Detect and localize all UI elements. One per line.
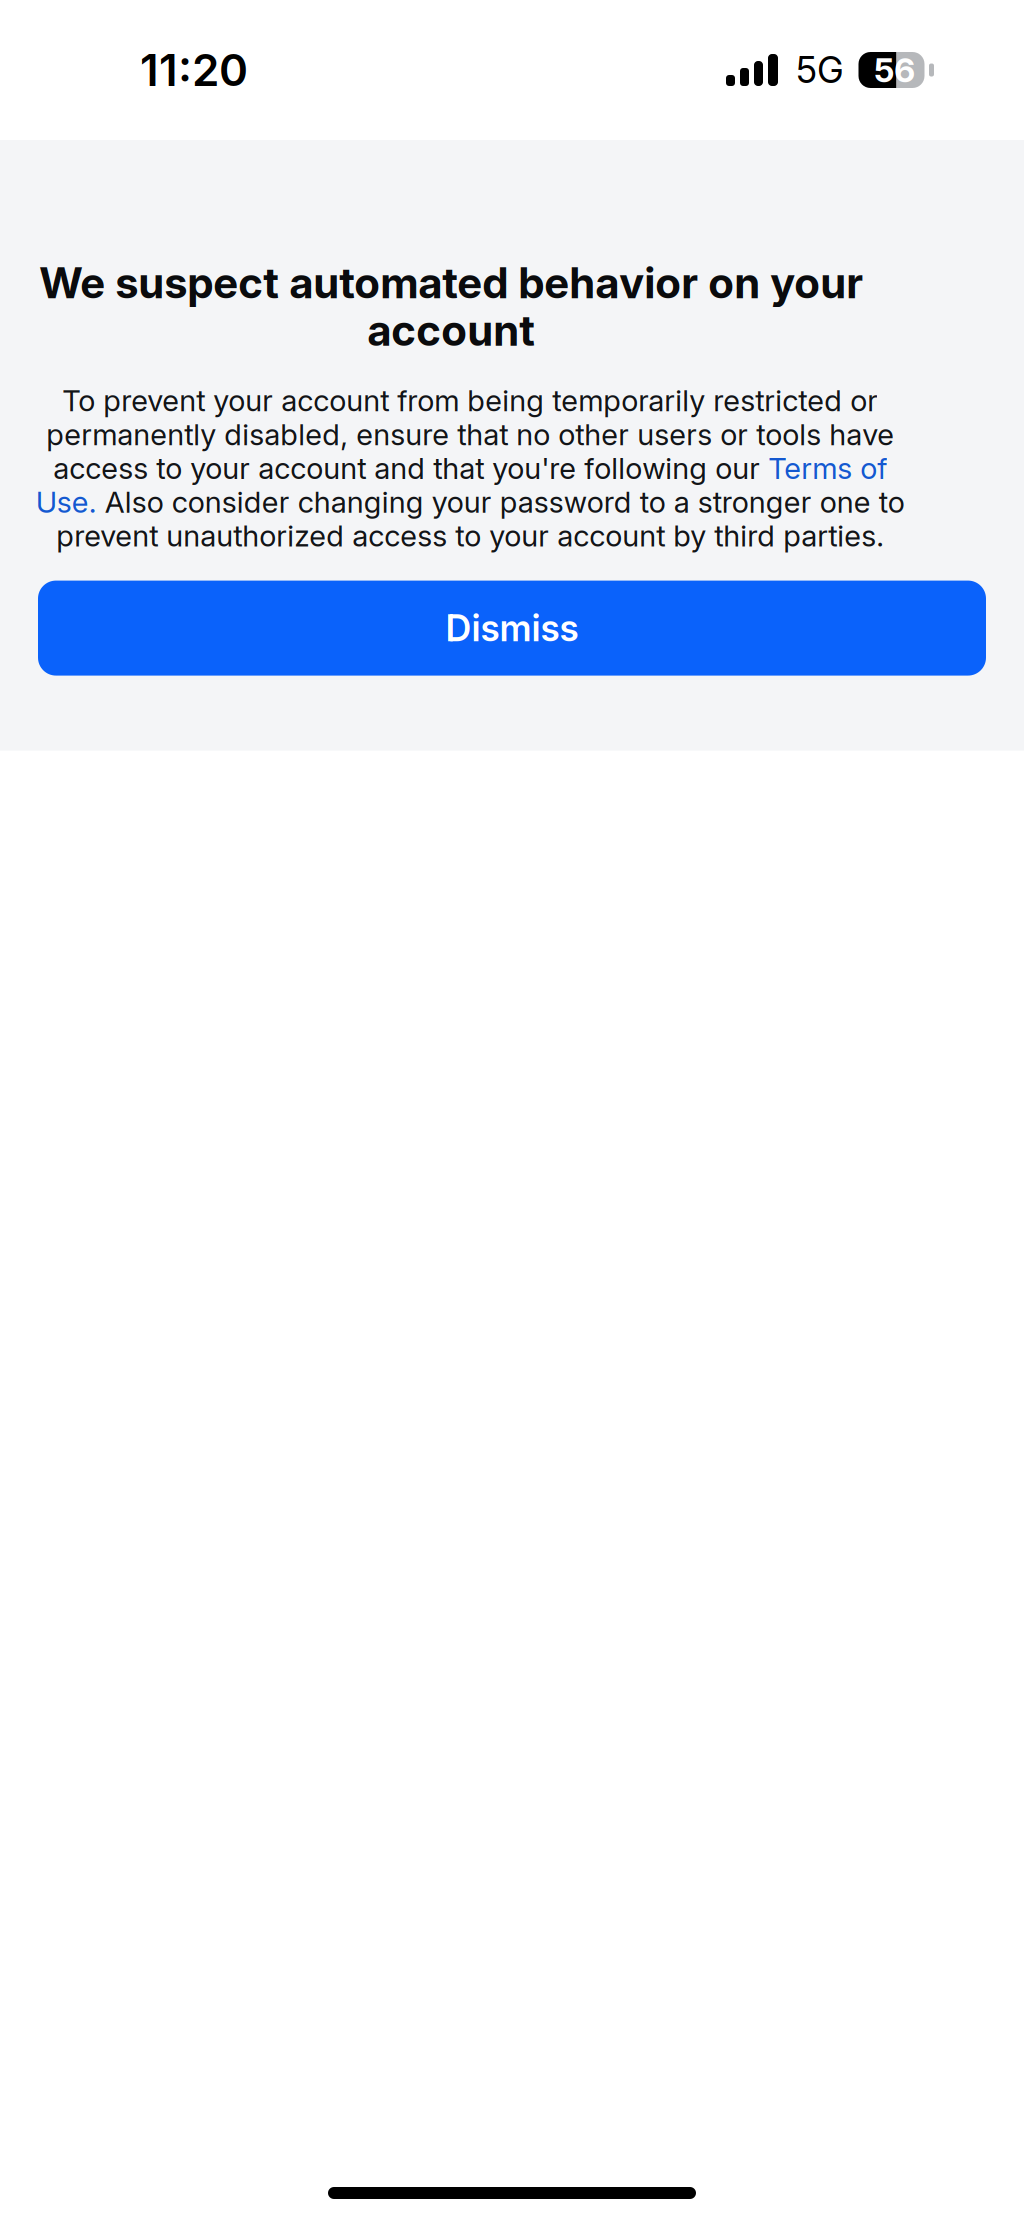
staticText: 56 bbox=[874, 50, 915, 90]
staticText: To prevent your account from being tempo… bbox=[35, 383, 904, 554]
staticText: 5G bbox=[796, 48, 844, 92]
staticText: Dismiss bbox=[445, 606, 578, 650]
button[interactable]: Dismiss bbox=[38, 581, 986, 676]
staticText: 11:20 bbox=[140, 43, 248, 97]
staticText: We suspect automated behavior on your ac… bbox=[39, 257, 863, 356]
button[interactable]: Terms of Use bbox=[38, 483, 108, 513]
button[interactable]: Terms of Use bbox=[770, 449, 890, 479]
